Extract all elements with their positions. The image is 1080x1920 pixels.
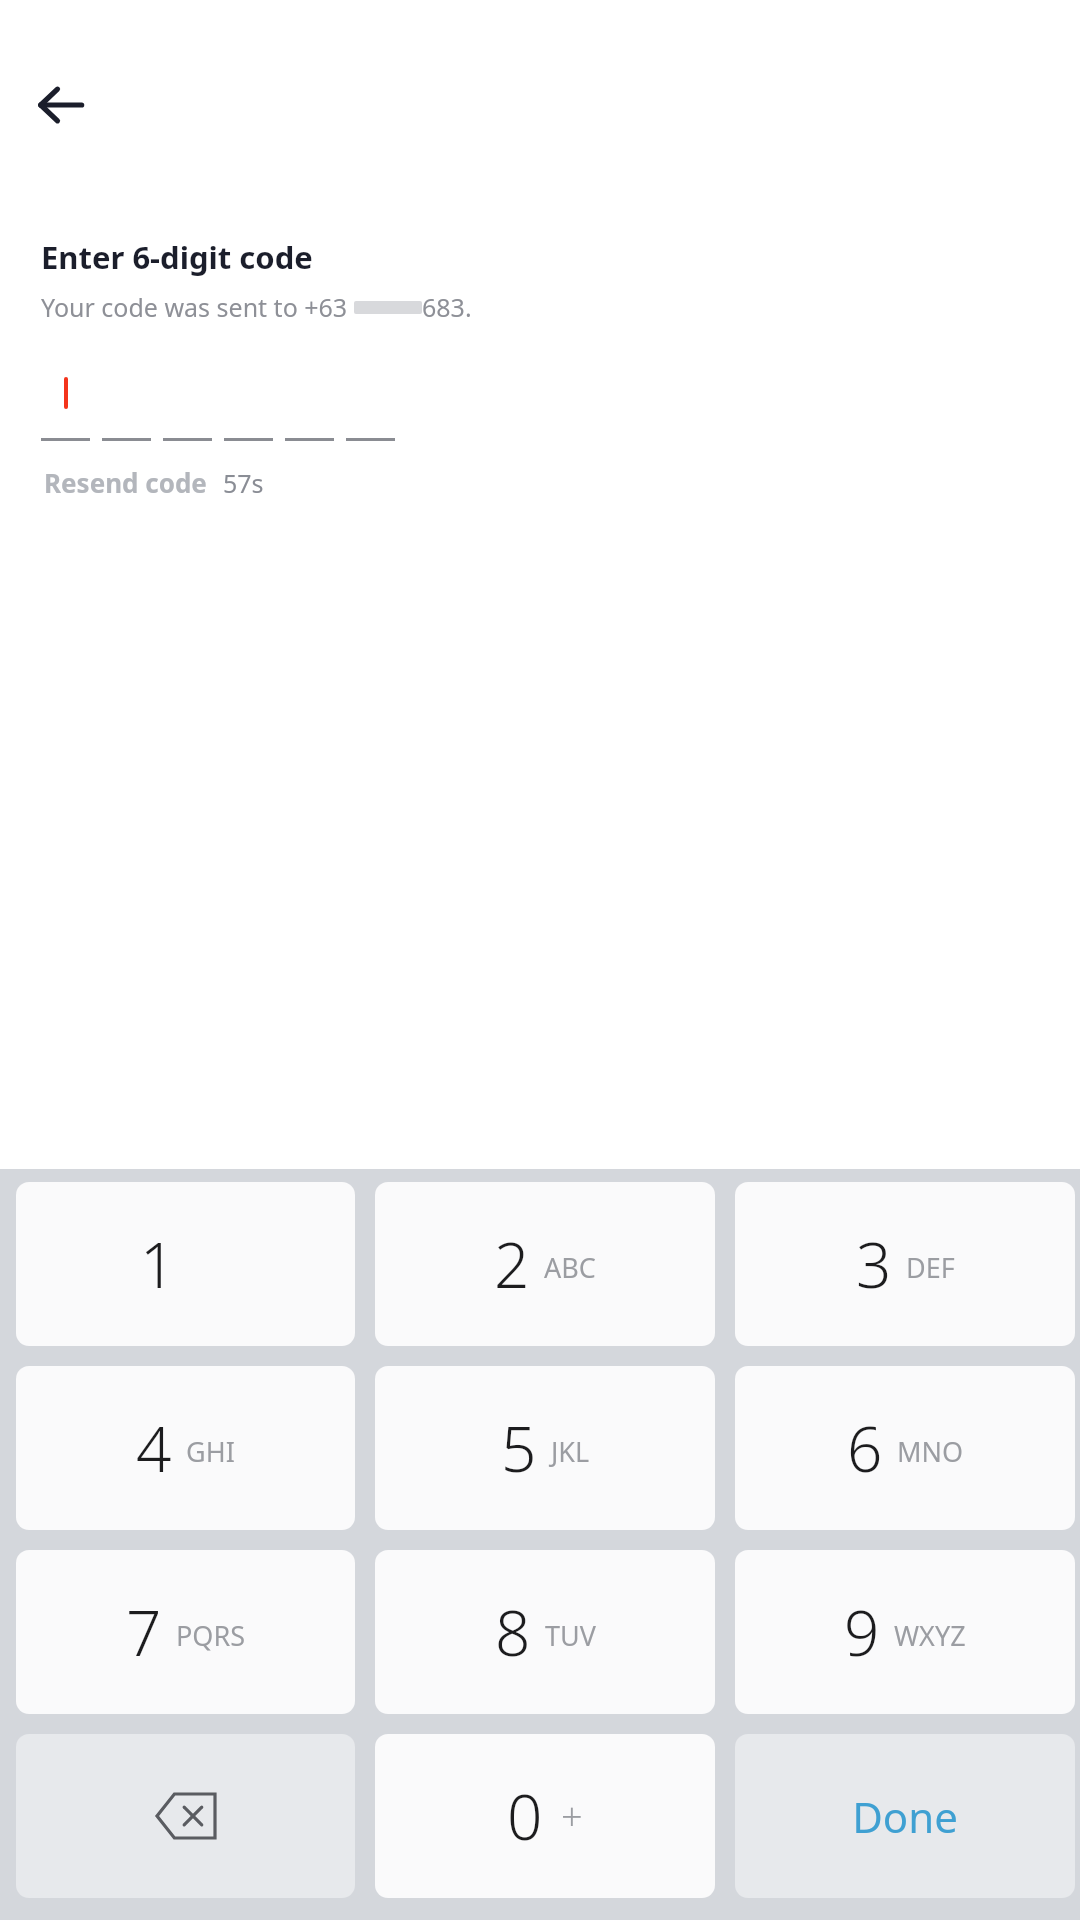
staticText: 683. (422, 290, 472, 324)
staticText: 2 (494, 1222, 530, 1306)
button[interactable] (224, 374, 273, 441)
staticText: 7 (126, 1590, 162, 1674)
staticText: 0 (507, 1774, 543, 1858)
staticText: Resend code (44, 465, 207, 500)
button[interactable]: Backspace (16, 1734, 355, 1898)
button[interactable]: 7 (16, 1550, 355, 1714)
button[interactable] (102, 374, 151, 441)
staticText: GHI (186, 1433, 235, 1470)
button[interactable]: 2 (375, 1182, 715, 1346)
button[interactable]: Done (735, 1734, 1075, 1898)
button[interactable]: 8 (375, 1550, 715, 1714)
staticText: ABC (544, 1249, 596, 1286)
staticText: 3 (856, 1222, 892, 1306)
button[interactable]: 4 (16, 1366, 355, 1530)
staticText: 6 (847, 1406, 883, 1490)
staticText: TUV (545, 1617, 596, 1654)
button[interactable] (346, 374, 395, 441)
button[interactable]: 5 (375, 1366, 715, 1530)
button[interactable]: 3 (735, 1182, 1075, 1346)
staticText: JKL (551, 1433, 590, 1470)
staticText: 1 (140, 1222, 176, 1306)
button[interactable]: 6 (735, 1366, 1075, 1530)
staticText: 9 (844, 1590, 880, 1674)
button[interactable]: Resend code (44, 465, 207, 500)
button[interactable]: 9 (735, 1550, 1075, 1714)
button[interactable] (163, 374, 212, 441)
staticText: WXYZ (894, 1617, 966, 1654)
staticText: DEF (906, 1249, 955, 1286)
staticText: 5 (501, 1406, 537, 1490)
staticText: 8 (495, 1590, 531, 1674)
button[interactable] (285, 374, 334, 441)
staticText: Your code was sent to +63 (41, 290, 354, 324)
button[interactable]: 1 (16, 1182, 355, 1346)
staticText: MNO (897, 1433, 964, 1470)
staticText: PQRS (176, 1617, 246, 1654)
button[interactable] (41, 374, 90, 441)
staticText: + (561, 1790, 583, 1842)
staticText: 57s (223, 466, 264, 500)
staticText: Done (852, 1788, 958, 1845)
button[interactable]: Back (30, 74, 92, 136)
staticText: 4 (136, 1406, 172, 1490)
staticText: Enter 6-digit code (41, 236, 313, 278)
button[interactable]: 0 (375, 1734, 715, 1898)
